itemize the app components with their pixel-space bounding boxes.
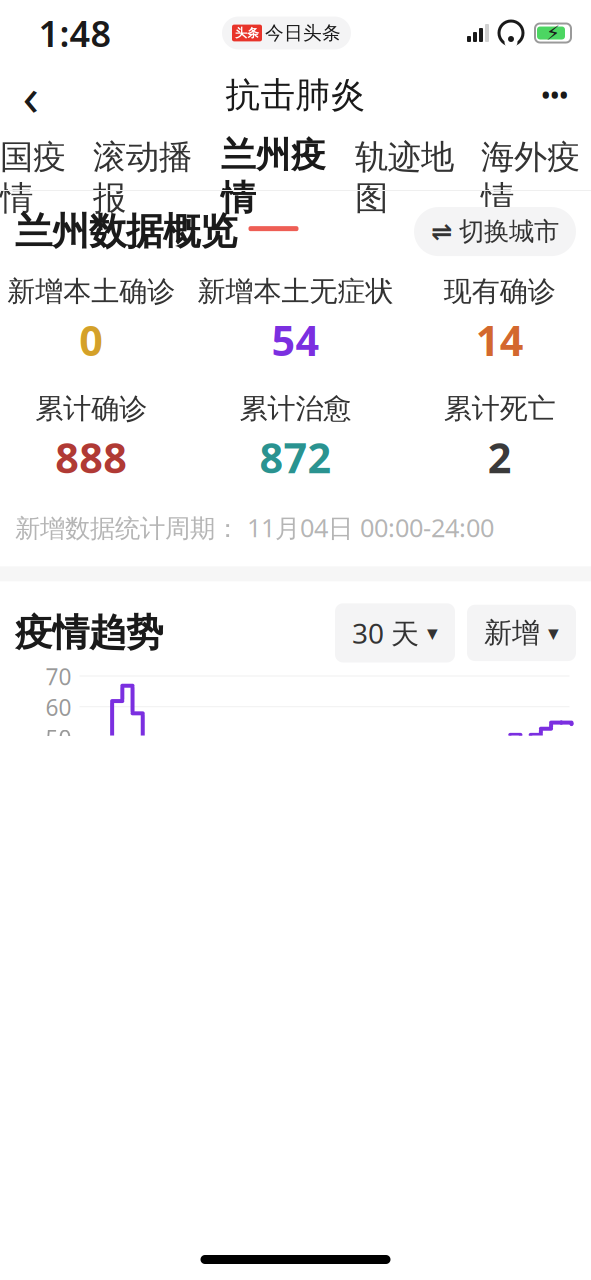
button[interactable]: 30 天 — [335, 603, 455, 662]
staticText: 新增数据统计周期： 11月04日 00:00-24:00 — [15, 511, 494, 544]
staticText: 新增本土确诊 — [7, 274, 175, 308]
button[interactable]: 新增 — [467, 605, 576, 661]
staticText: 抗击肺炎 — [225, 74, 365, 116]
staticText: 14 — [476, 312, 524, 367]
staticText: 50 — [45, 723, 71, 753]
staticText: 疫情趋势 — [15, 610, 163, 656]
staticText: 兰州数据概览 — [15, 209, 237, 254]
staticText: 0 — [363, 1254, 381, 1280]
staticText: 54 — [271, 312, 319, 367]
button[interactable]: More options — [519, 67, 591, 123]
staticText: 累计死亡 — [444, 391, 556, 426]
staticText: 现有确诊 — [444, 274, 556, 308]
staticText: 1:48 — [38, 9, 111, 57]
staticText: ⇌ — [431, 217, 452, 246]
staticText: ••• — [541, 80, 568, 110]
staticText: 新增 — [484, 616, 540, 650]
staticText: ‹ — [22, 60, 39, 130]
button[interactable]: 兰州疫情 — [207, 124, 340, 231]
staticText: 60 — [45, 692, 71, 722]
button[interactable]: 滚动播报 — [78, 127, 207, 228]
button[interactable]: 海外疫情 — [469, 127, 580, 228]
button[interactable]: 国疫情 — [0, 127, 78, 228]
staticText: 新增本土无症状 — [197, 274, 393, 308]
staticText: 兰州疫情 — [221, 134, 326, 219]
button[interactable]: 七里河区 — [0, 1236, 591, 1280]
staticText: 0 — [79, 312, 103, 367]
staticText: ▾ — [548, 621, 559, 645]
staticText: 888 — [55, 430, 127, 485]
staticText: 轨迹地图 — [355, 137, 454, 218]
staticText: 872 — [259, 430, 331, 485]
staticText: 海外疫情 — [481, 137, 580, 218]
button[interactable]: ⇌ — [414, 207, 576, 256]
staticText: 滚动播报 — [93, 137, 192, 218]
staticText: ⚡︎ — [546, 22, 560, 44]
staticText: 头条 — [235, 26, 259, 40]
button[interactable]: 轨迹地图 — [340, 127, 469, 228]
staticText: 累计确诊 — [35, 391, 147, 426]
staticText: 待公布 — [184, 1255, 283, 1280]
staticText: 70 — [45, 661, 71, 691]
staticText: 累计治愈 — [239, 391, 351, 426]
staticText: 30 天 — [352, 614, 419, 651]
staticText: 国疫情 — [0, 137, 66, 218]
button[interactable]: Back — [0, 67, 62, 123]
staticText: 切换城市 — [459, 216, 559, 247]
staticText: ▾ — [427, 621, 438, 645]
staticText: 2 — [488, 430, 512, 485]
staticText: 今日头条 — [265, 21, 341, 44]
